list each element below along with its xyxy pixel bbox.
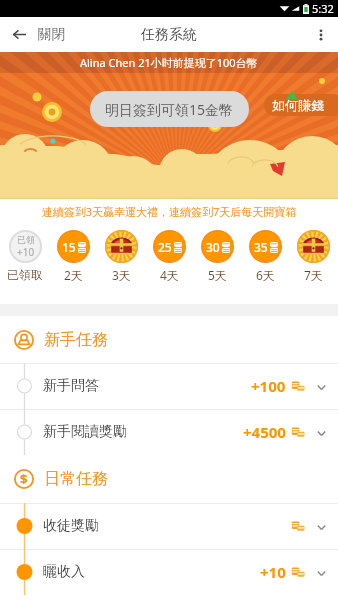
staticText: Alina Chen 21小时前提现了100台幣	[80, 55, 258, 70]
button[interactable]: 明日簽到可領15金幣	[90, 91, 249, 127]
staticText: 明日簽到可領15金幣	[105, 100, 234, 119]
staticText: 已領取	[7, 267, 43, 282]
staticText: 曬收入	[43, 563, 85, 581]
button[interactable]: 新手任務	[0, 316, 338, 363]
staticText: +10	[260, 562, 286, 582]
staticText: 收徒獎勵	[43, 517, 99, 535]
staticText: 7天	[304, 267, 323, 283]
button[interactable]: 15	[52, 230, 94, 283]
button[interactable]: 35	[244, 230, 286, 283]
button[interactable]: 3天	[100, 230, 142, 283]
staticText: 4天	[160, 267, 179, 283]
staticText: 3天	[112, 267, 131, 283]
button[interactable]: 25	[148, 230, 190, 283]
staticText: 連續簽到3天贏幸運大禮，連續簽到7天后每天開寶箱	[0, 204, 338, 219]
staticText: 15	[62, 239, 76, 255]
button[interactable]: 如何賺錢	[264, 94, 338, 116]
staticText: +100	[251, 376, 286, 396]
staticText: 30	[206, 239, 220, 255]
staticText: 5天	[208, 267, 227, 283]
staticText: 2天	[64, 267, 83, 283]
button[interactable]: $	[0, 455, 338, 503]
staticText: 35	[254, 239, 268, 255]
staticText: +4500	[243, 422, 286, 442]
staticText: 如何賺錢	[272, 97, 324, 113]
button[interactable]: 7天	[292, 230, 334, 283]
staticText: 新手任務	[44, 330, 108, 350]
staticText: 任務系統	[141, 26, 197, 44]
button[interactable]: 曬收入	[0, 549, 338, 595]
button[interactable]: 收徒獎勵	[0, 503, 338, 549]
staticText: 已領	[17, 234, 35, 245]
staticText: 6天	[256, 267, 275, 283]
staticText: 新手閱讀獎勵	[43, 423, 127, 441]
button[interactable]: 關閉	[0, 17, 75, 52]
staticText: $	[20, 469, 28, 487]
button[interactable]: 新手問答	[0, 363, 338, 409]
staticText: +10	[17, 245, 35, 259]
button[interactable]: 已領	[4, 230, 46, 282]
staticText: 5:32	[312, 1, 334, 16]
button[interactable]: 30	[196, 230, 238, 283]
staticText: 25	[158, 239, 172, 255]
staticText: 關閉	[38, 26, 65, 43]
button[interactable]: 新手閱讀獎勵	[0, 409, 338, 455]
button[interactable]: More options	[303, 17, 338, 52]
staticText: 日常任務	[44, 469, 108, 489]
staticText: 新手問答	[43, 377, 99, 395]
